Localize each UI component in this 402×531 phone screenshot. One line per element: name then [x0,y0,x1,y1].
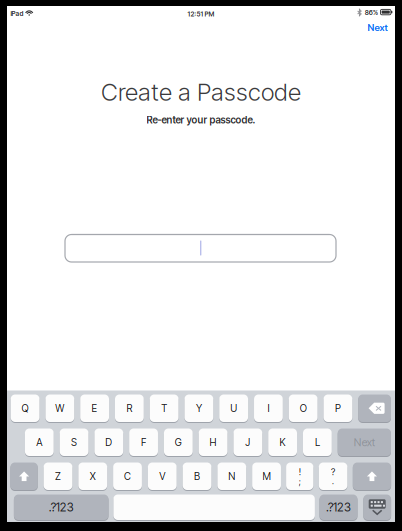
button[interactable]: Numbers and symbols [14,494,108,520]
button[interactable]: M [252,462,281,490]
staticText: iPad [10,9,23,18]
button[interactable]: A [25,428,54,456]
button[interactable]: Next [357,17,397,37]
button[interactable]: exclamation and semicolon [286,462,313,490]
button[interactable]: W [45,394,74,422]
staticText: ? [331,466,335,478]
staticText: W [55,402,64,414]
button[interactable]: Delete [358,394,391,422]
button[interactable]: space [113,494,315,520]
button[interactable]: question mark and period [319,462,347,490]
staticText: Create a Passcode [101,77,301,106]
staticText: H [210,436,217,448]
button[interactable]: O [289,394,318,422]
button[interactable]: Hide keyboard [363,494,391,520]
staticText: G [175,436,182,448]
button[interactable]: P [323,394,352,422]
button[interactable]: N [217,462,246,490]
staticText: K [280,436,286,448]
button[interactable]: Next [338,428,391,456]
staticText: V [159,470,165,482]
button[interactable]: D [94,428,123,456]
staticText: Next [354,436,375,449]
staticText: Z [55,470,61,482]
button[interactable]: E [80,394,109,422]
staticText: U [230,402,237,414]
staticText: X [90,470,96,482]
staticText: 12:51 PM [187,10,214,18]
button[interactable]: Z [44,462,72,490]
button[interactable]: Q [11,394,39,422]
staticText: N [228,470,235,482]
staticText: Y [196,402,202,414]
staticText: D [105,436,112,448]
staticText: R [126,402,132,414]
staticText: I [267,402,269,414]
button[interactable]: G [164,428,193,456]
staticText: ! [299,466,301,478]
button[interactable]: I [254,394,283,422]
button[interactable]: V [148,462,177,490]
staticText: E [92,402,98,414]
staticText: T [161,402,167,414]
staticText: M [263,470,271,482]
button[interactable]: B [183,462,211,490]
staticText: Next [367,22,387,33]
button[interactable]: F [129,428,158,456]
button[interactable]: C [113,462,142,490]
staticText: .?123 [326,500,351,514]
button[interactable]: Shift [353,462,391,490]
staticText: . [332,477,334,486]
button[interactable]: Y [184,394,213,422]
button[interactable]: Shift [10,462,38,490]
staticText: Q [22,402,29,414]
staticText: Re-enter your passcode. [146,114,255,126]
staticText: L [315,436,320,448]
staticText: C [124,470,131,482]
staticText: S [71,436,77,448]
staticText: 86% [365,8,378,17]
button[interactable]: Numbers and symbols [319,494,357,520]
staticText: .?123 [49,500,74,514]
staticText: F [141,436,146,448]
staticText: B [194,470,200,482]
button[interactable]: T [150,394,178,422]
button[interactable]: L [303,428,332,456]
staticText: J [245,436,250,448]
staticText: O [300,402,307,414]
button[interactable]: K [268,428,297,456]
button[interactable]: H [199,428,227,456]
button[interactable]: J [233,428,262,456]
staticText: P [335,402,341,414]
button[interactable]: S [60,428,88,456]
button[interactable]: R [115,394,144,422]
button[interactable]: U [219,394,248,422]
button[interactable]: X [78,462,107,490]
staticText: A [36,436,42,448]
staticText: ; [299,477,301,486]
